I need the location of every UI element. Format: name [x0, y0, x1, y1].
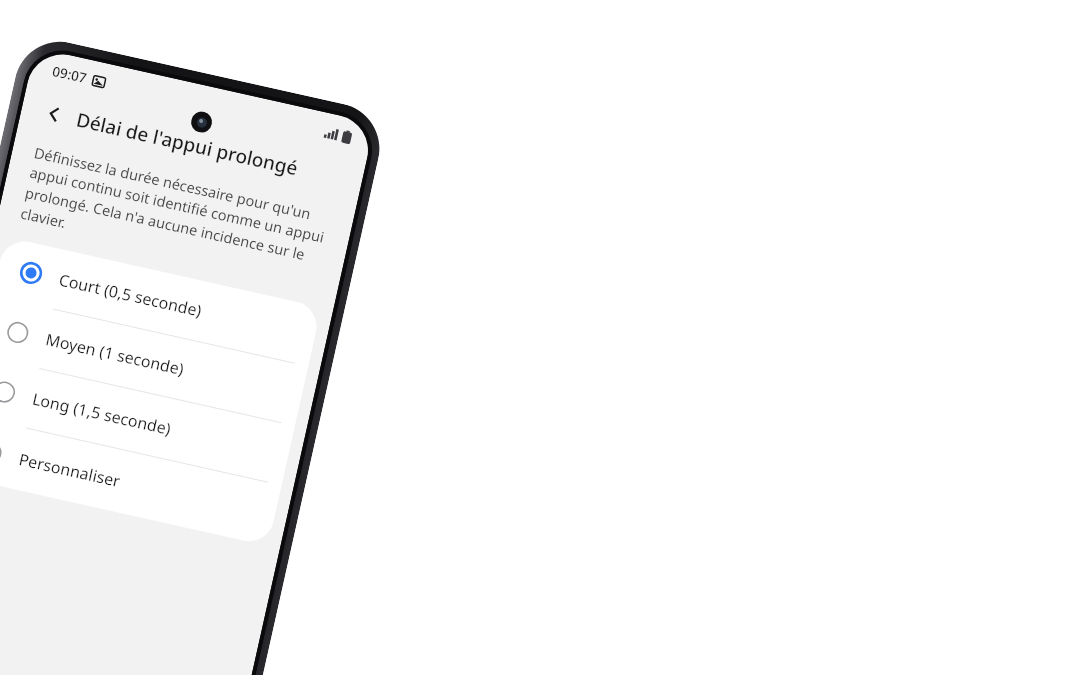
staticText: Personnaliser — [17, 448, 122, 492]
staticText: Court (0,5 seconde) — [57, 268, 204, 322]
button[interactable]: Long (1,5 seconde) — [0, 355, 295, 485]
button[interactable]: Back — [32, 91, 77, 137]
staticText: Définissez la durée nécessaire pour qu'u… — [19, 142, 333, 289]
staticText: 09:07 — [51, 62, 89, 87]
staticText: Délai de l'appui prolongé — [74, 106, 301, 181]
button[interactable]: Court (0,5 seconde) — [0, 236, 322, 366]
staticText: Long (1,5 seconde) — [30, 388, 174, 440]
button[interactable]: Personnaliser — [0, 415, 282, 546]
button[interactable]: Moyen (1 seconde) — [0, 296, 308, 425]
staticText: Moyen (1 seconde) — [44, 328, 186, 380]
